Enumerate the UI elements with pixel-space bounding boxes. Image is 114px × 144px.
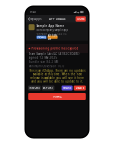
staticText: Minimum iOS version 16.0 <box>29 64 65 68</box>
staticText: Team: Example Labs LLC (A1B2C3D4E5) sign… <box>29 52 80 59</box>
staticText: This is an iOS App. There are no updates… <box>29 69 85 83</box>
button[interactable]: SETTINGS <box>48 36 58 39</box>
button[interactable]: REVOKE <box>28 85 41 90</box>
staticText: Sample App Name <box>36 24 64 28</box>
button[interactable]: DELETE <box>74 85 86 90</box>
staticText: DONE <box>77 17 84 21</box>
staticText: Provisioning profile has expired <box>31 47 78 50</box>
button[interactable]: EXPORT <box>42 85 54 90</box>
staticText: 9:41 <box>30 10 37 14</box>
button[interactable]: SHARE <box>62 85 73 90</box>
staticText: INSTALL <box>52 95 61 98</box>
staticText: SETTINGS <box>48 34 58 41</box>
staticText: EXPORT <box>43 86 54 90</box>
staticText: Bundle size 84.2 MB <box>29 60 59 64</box>
staticText: SHARE <box>63 86 71 90</box>
staticText: com.company.sampleapp <box>36 28 68 32</box>
button[interactable]: INSTALL <box>36 36 46 39</box>
staticText: DELETE <box>76 86 84 90</box>
button[interactable]: My Apps <box>28 16 43 22</box>
staticText: My Apps <box>30 17 41 21</box>
button[interactable]: INSTALL <box>28 93 86 100</box>
button[interactable]: DONE <box>76 16 86 22</box>
staticText: Version 3.2.1 (4410) <box>36 32 67 36</box>
staticText: INSTALL <box>37 35 46 39</box>
staticText: REVOKE <box>29 86 39 90</box>
staticText: APP DETAILS <box>49 17 65 21</box>
